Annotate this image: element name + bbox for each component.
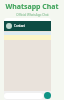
staticText: Contact <box>14 24 25 28</box>
button[interactable]: Send <box>44 92 51 99</box>
staticText: Whatsapp Chat <box>5 2 59 12</box>
staticText: Official WhatsApp Chat <box>16 13 49 17</box>
button[interactable]: Contact <box>4 21 51 31</box>
